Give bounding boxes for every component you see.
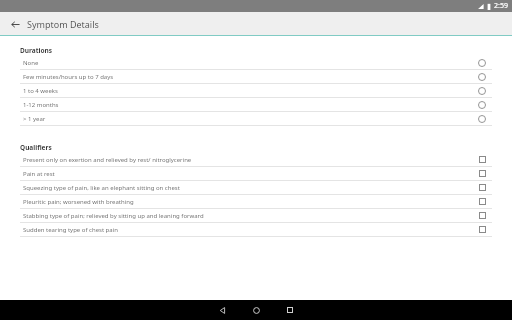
staticText: Squeezing type of pain, like an elephant… [23,184,479,192]
button[interactable]: Pain at rest [0,167,512,181]
staticText: Pain at rest [23,170,479,178]
button[interactable]: Few minutes/hours up to 7 days [0,70,512,84]
staticText: > 1 year [23,115,478,123]
button[interactable]: 1-12 months [0,98,512,112]
button[interactable]: Squeezing type of pain, like an elephant… [0,181,512,195]
staticText: None [23,59,478,67]
staticText: Symptom Details [27,18,99,30]
button[interactable]: Pleuritic pain; worsened with breathing [0,195,512,209]
staticText: Qualifiers [20,143,52,152]
button[interactable]: > 1 year [0,112,512,126]
staticText: 2:59 [494,1,508,11]
staticText: 1 to 4 weeks [23,87,478,95]
staticText: Durations [20,46,52,55]
button[interactable]: None [0,56,512,70]
button[interactable]: Home [239,300,273,320]
staticText: Few minutes/hours up to 7 days [23,73,478,81]
staticText: Pleuritic pain; worsened with breathing [23,198,479,206]
button[interactable]: 1 to 4 weeks [0,84,512,98]
staticText: Stabbing type of pain; relieved by sitti… [23,212,479,220]
button[interactable]: Present only on exertion and relieved by… [0,153,512,167]
button[interactable]: Sudden tearing type of chest pain [0,223,512,237]
button[interactable]: Back [6,15,24,33]
button[interactable]: Recent apps [273,300,307,320]
staticText: 1-12 months [23,101,478,109]
button[interactable]: Back [205,300,239,320]
staticText: Sudden tearing type of chest pain [23,226,479,234]
button[interactable]: Stabbing type of pain; relieved by sitti… [0,209,512,223]
staticText: Present only on exertion and relieved by… [23,156,479,164]
